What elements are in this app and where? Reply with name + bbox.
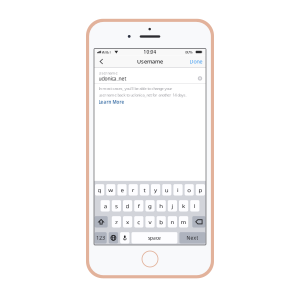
staticText: space <box>148 234 161 241</box>
button[interactable]: t <box>140 184 149 195</box>
button[interactable]: m <box>179 216 188 227</box>
button[interactable]: f <box>134 200 143 211</box>
staticText: g <box>148 202 152 210</box>
staticText: r <box>132 186 135 194</box>
button[interactable]: b <box>157 216 166 227</box>
staticText: 123 <box>96 234 105 241</box>
staticText: q <box>98 186 102 194</box>
staticText: v <box>148 218 151 226</box>
button[interactable]: l <box>190 200 199 211</box>
staticText: u <box>165 186 169 194</box>
button[interactable]: Shift <box>94 216 108 227</box>
staticText: b <box>159 218 163 226</box>
button[interactable]: j <box>168 200 177 211</box>
staticText: 10:04 <box>143 49 156 55</box>
staticText: k <box>182 202 185 210</box>
button[interactable]: n <box>168 216 177 227</box>
button[interactable]: x <box>123 216 132 227</box>
staticText: d <box>126 202 130 210</box>
button[interactable]: y <box>151 184 160 195</box>
staticText: m <box>181 218 187 226</box>
staticText: j <box>171 202 173 210</box>
staticText: Learn More <box>98 99 124 105</box>
button[interactable]: o <box>185 184 194 195</box>
button[interactable]: a <box>101 200 110 211</box>
staticText: o <box>187 186 191 194</box>
staticText: In most cases, you'll be able to change … <box>98 86 172 91</box>
button[interactable]: Learn More <box>98 99 124 105</box>
staticText: s <box>115 202 118 210</box>
button[interactable]: k <box>179 200 188 211</box>
button[interactable]: e <box>117 184 127 195</box>
button[interactable]: c <box>134 216 143 227</box>
staticText: Next <box>186 234 198 241</box>
staticText: Username <box>98 70 117 76</box>
staticText: uclonica_net <box>98 75 126 82</box>
staticText: t <box>143 186 145 194</box>
staticText: p <box>198 186 202 194</box>
staticText: x <box>126 218 129 226</box>
button[interactable]: u <box>162 184 171 195</box>
button[interactable]: v <box>145 216 155 227</box>
button[interactable]: i <box>173 184 183 195</box>
button[interactable]: Next <box>179 232 205 243</box>
button[interactable]: Clear text <box>196 74 204 82</box>
button[interactable]: space <box>131 232 177 243</box>
button[interactable]: d <box>123 200 132 211</box>
staticText: z <box>115 218 118 226</box>
button[interactable]: Delete <box>192 216 205 227</box>
staticText: w <box>108 186 113 194</box>
staticText: username back to uclonica_net for anothe… <box>98 92 186 98</box>
button[interactable]: g <box>145 200 155 211</box>
staticText: n <box>170 218 174 226</box>
button[interactable]: Dictate <box>120 232 129 243</box>
button[interactable]: z <box>112 216 121 227</box>
staticText: AT&T <box>101 49 111 55</box>
button[interactable]: 123 <box>95 232 107 243</box>
staticText: f <box>138 202 140 210</box>
staticText: Done <box>190 58 203 65</box>
staticText: h <box>159 202 163 210</box>
button[interactable]: q <box>95 184 104 195</box>
staticText: i <box>177 186 179 194</box>
staticText: y <box>154 186 157 194</box>
button[interactable]: r <box>129 184 138 195</box>
button[interactable]: w <box>106 184 115 195</box>
staticText: 80% <box>185 49 192 55</box>
staticText: a <box>104 202 107 210</box>
button[interactable]: s <box>112 200 121 211</box>
button[interactable]: Switch keyboard <box>109 232 118 243</box>
staticText: c <box>137 218 140 226</box>
staticText: e <box>120 186 123 194</box>
button[interactable]: p <box>196 184 205 195</box>
button[interactable]: h <box>157 200 166 211</box>
button[interactable]: Done <box>186 55 206 68</box>
staticText: l <box>194 202 196 210</box>
button[interactable]: Back <box>94 56 106 67</box>
staticText: Username <box>137 58 163 65</box>
